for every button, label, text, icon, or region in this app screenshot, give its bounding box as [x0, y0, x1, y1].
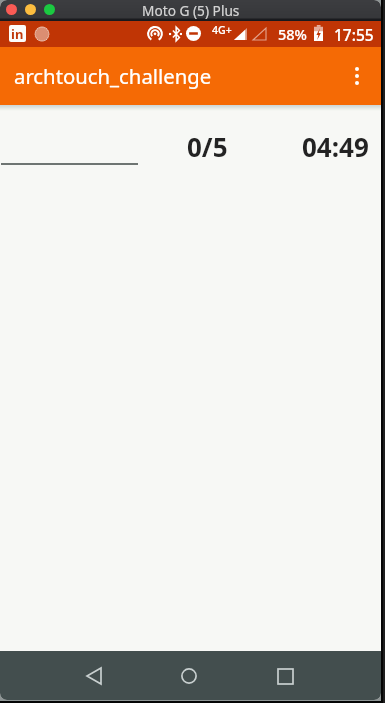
- staticText: 58%: [278, 24, 307, 44]
- staticText: 17:55: [334, 24, 374, 45]
- staticText: 4G+: [212, 23, 232, 37]
- staticText: Moto G (5) Plus: [142, 1, 240, 20]
- button[interactable]: Recent apps: [261, 652, 309, 700]
- button[interactable]: Home: [165, 652, 213, 700]
- button[interactable]: Back: [70, 652, 118, 700]
- staticText: archtouch_challenge: [14, 62, 212, 90]
- staticText: 04:49: [302, 129, 369, 164]
- staticText: in: [11, 25, 24, 42]
- button[interactable]: More options: [333, 52, 381, 100]
- button[interactable]: [1, 135, 138, 165]
- staticText: 0/5: [187, 129, 228, 164]
